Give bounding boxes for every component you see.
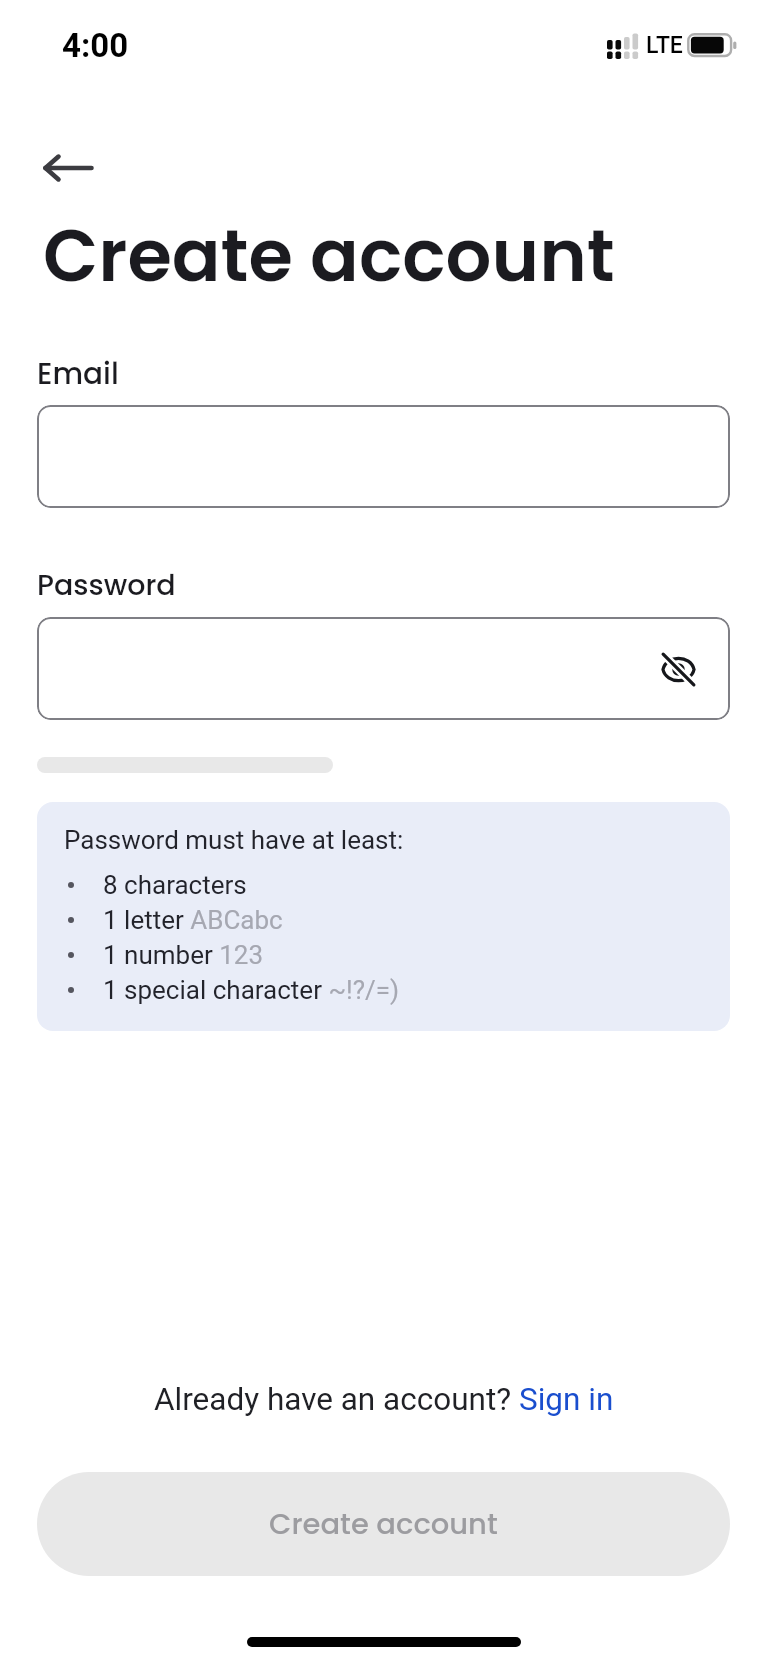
button[interactable] xyxy=(37,617,730,720)
staticText: Password xyxy=(37,565,176,605)
staticText: 1 letter ABCabc xyxy=(103,905,283,935)
staticText: Already have an account? xyxy=(154,1381,519,1418)
staticText: 4:00 xyxy=(62,26,129,65)
staticText: Password must have at least: xyxy=(64,825,404,855)
button[interactable]: Back xyxy=(25,140,81,196)
staticText: 1 number 123 xyxy=(103,940,264,970)
staticText: LTE xyxy=(646,32,683,59)
button[interactable]: Sign in xyxy=(519,1381,614,1418)
staticText: 8 characters xyxy=(103,870,247,900)
staticText: Sign in xyxy=(519,1381,614,1418)
button[interactable]: Show password xyxy=(642,633,714,705)
staticText: Create account xyxy=(269,1504,498,1545)
staticText: Email xyxy=(37,353,119,394)
staticText: 1 special character ~!?/=) xyxy=(103,975,400,1005)
button[interactable] xyxy=(37,405,730,508)
button[interactable]: Create account xyxy=(37,1472,730,1576)
staticText: Create account xyxy=(43,205,615,306)
